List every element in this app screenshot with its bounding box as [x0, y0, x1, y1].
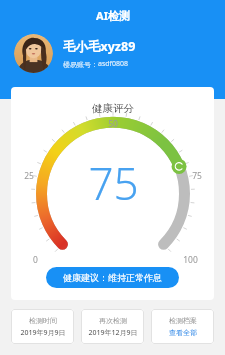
staticText: 75 — [192, 170, 202, 182]
staticText: 再次检测 — [99, 316, 127, 325]
button[interactable]: 检测时间 — [11, 309, 74, 344]
staticText: 毛小毛xyz89 — [63, 38, 136, 55]
button[interactable]: 再次检测 — [81, 309, 144, 344]
staticText: 25 — [24, 170, 34, 182]
staticText: 检测档案 — [169, 316, 197, 325]
staticText: 100 — [183, 254, 198, 266]
staticText: asdf0808 — [98, 59, 129, 69]
button[interactable]: 健康建议：维持正常作息 — [46, 267, 179, 288]
staticText: 健康评分 — [92, 102, 134, 115]
staticText: 50 — [108, 118, 118, 130]
staticText: 0 — [33, 254, 38, 266]
staticText: 75 — [88, 153, 139, 213]
staticText: 健康建议：维持正常作息 — [63, 272, 162, 283]
staticText: 2019年9月9日 — [20, 328, 66, 338]
button[interactable]: Profile photo — [14, 34, 136, 73]
staticText: 查看全部 — [169, 328, 197, 337]
other: Profile photo — [14, 34, 53, 73]
staticText: AI检测 — [96, 8, 130, 23]
button[interactable]: 检测档案 — [151, 309, 214, 344]
staticText: 检测时间 — [29, 316, 57, 325]
staticText: 2019年12月9日 — [88, 328, 138, 338]
staticText: 楼易账号： — [63, 60, 98, 69]
